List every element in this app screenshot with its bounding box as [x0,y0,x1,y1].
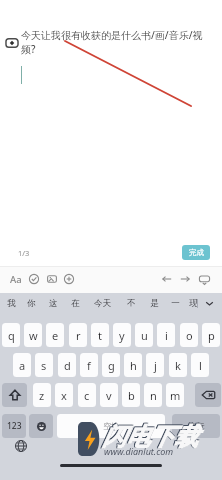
staticText: 换行 [188,421,205,432]
staticText: q [8,328,15,343]
staticText: i [165,328,168,343]
button[interactable]: Backspace [195,383,221,407]
staticText: 完成 [189,248,204,257]
staticText: x [61,388,67,403]
staticText: n [150,388,157,403]
button[interactable]: Enter [172,414,220,438]
button[interactable]: q [2,323,20,347]
staticText: k [175,358,181,373]
button[interactable]: 完成 [182,245,210,260]
staticText: Aa [10,273,22,286]
button[interactable]: Aa [9,272,23,286]
staticText: 123 [7,420,22,432]
staticText: e [52,328,59,343]
button[interactable]: v [100,383,118,407]
staticText: f [87,358,91,373]
button[interactable]: 今天 [91,295,113,312]
staticText: 在 [71,298,80,309]
button[interactable]: c [78,383,96,407]
button[interactable]: 是 [147,295,161,312]
button[interactable]: 现 [186,295,200,312]
button[interactable]: b [122,383,140,407]
button[interactable]: 空格 [57,414,165,438]
staticText: 是 [150,298,159,309]
button[interactable]: Numbers [2,414,26,438]
staticText: 不 [127,298,136,309]
button[interactable]: a [13,353,31,377]
button[interactable]: 一 [168,295,182,312]
button[interactable]: k [169,353,187,377]
button[interactable]: w [24,323,42,347]
staticText: v [106,388,112,403]
button[interactable]: 这 [46,295,60,312]
button[interactable]: u [135,323,153,347]
button[interactable]: y [113,323,131,347]
staticText: 闪电下载 [101,421,197,451]
button[interactable]: Undo [162,274,172,284]
button[interactable]: s [35,353,53,377]
button[interactable]: 不 [124,295,138,312]
button[interactable]: z [33,383,51,407]
button[interactable]: Emoji [29,414,53,438]
staticText: 1/3 [18,248,30,258]
button[interactable]: e [46,323,64,347]
staticText: 你 [27,298,36,309]
button[interactable]: h [124,353,142,377]
staticText: 闪电下载 [102,422,198,452]
button[interactable]: p [202,323,220,347]
staticText: g [108,358,115,373]
button[interactable]: o [180,323,198,347]
staticText: 今天让我很有收获的是什么书/画/音乐/视频? [21,28,217,56]
button[interactable]: 在 [68,295,82,312]
staticText: z [39,388,45,403]
staticText: 闪电下载 [102,421,198,451]
button[interactable]: More suggestions [202,296,216,310]
staticText: a [19,358,26,373]
staticText: 空格 [103,421,119,431]
staticText: m [170,388,181,403]
button[interactable]: n [144,383,162,407]
staticText: 今天 [94,298,111,309]
button[interactable]: r [69,323,87,347]
button[interactable]: Insert image [47,274,57,284]
staticText: j [154,358,157,373]
staticText: t [98,328,102,343]
button[interactable]: Checklist [29,274,39,284]
button[interactable]: t [91,323,109,347]
staticText: p [208,328,215,343]
staticText: w [29,328,38,343]
button[interactable]: i [157,323,175,347]
button[interactable]: l [191,353,209,377]
button[interactable]: Shift [2,383,27,407]
button[interactable]: x [55,383,73,407]
button[interactable]: j [146,353,164,377]
button[interactable]: f [80,353,98,377]
staticText: d [64,358,71,373]
staticText: 一 [171,298,180,309]
staticText: r [76,328,81,343]
staticText: 这 [49,298,58,309]
button[interactable]: Add [64,274,74,284]
staticText: s [41,358,47,373]
staticText: c [84,388,90,403]
button[interactable]: Prompt [5,36,19,50]
staticText: 现 [189,298,198,309]
button[interactable]: d [58,353,76,377]
button[interactable]: 你 [24,295,38,312]
button[interactable]: Change input method [15,440,27,452]
staticText: 我 [7,298,16,309]
staticText: y [119,328,125,343]
button[interactable]: Redo [180,274,190,284]
button[interactable]: m [166,383,184,407]
staticText: o [186,328,193,343]
button[interactable]: 我 [4,295,18,312]
staticText: 闪电下载 [102,422,198,452]
button[interactable]: Hide keyboard [199,274,210,285]
button[interactable]: g [102,353,120,377]
staticText: b [128,388,135,403]
staticText: 闪电下载 [101,422,197,452]
staticText: u [141,328,148,343]
staticText: h [130,358,137,373]
staticText: l [199,358,202,373]
staticText: www.dianlut.com [104,445,174,457]
